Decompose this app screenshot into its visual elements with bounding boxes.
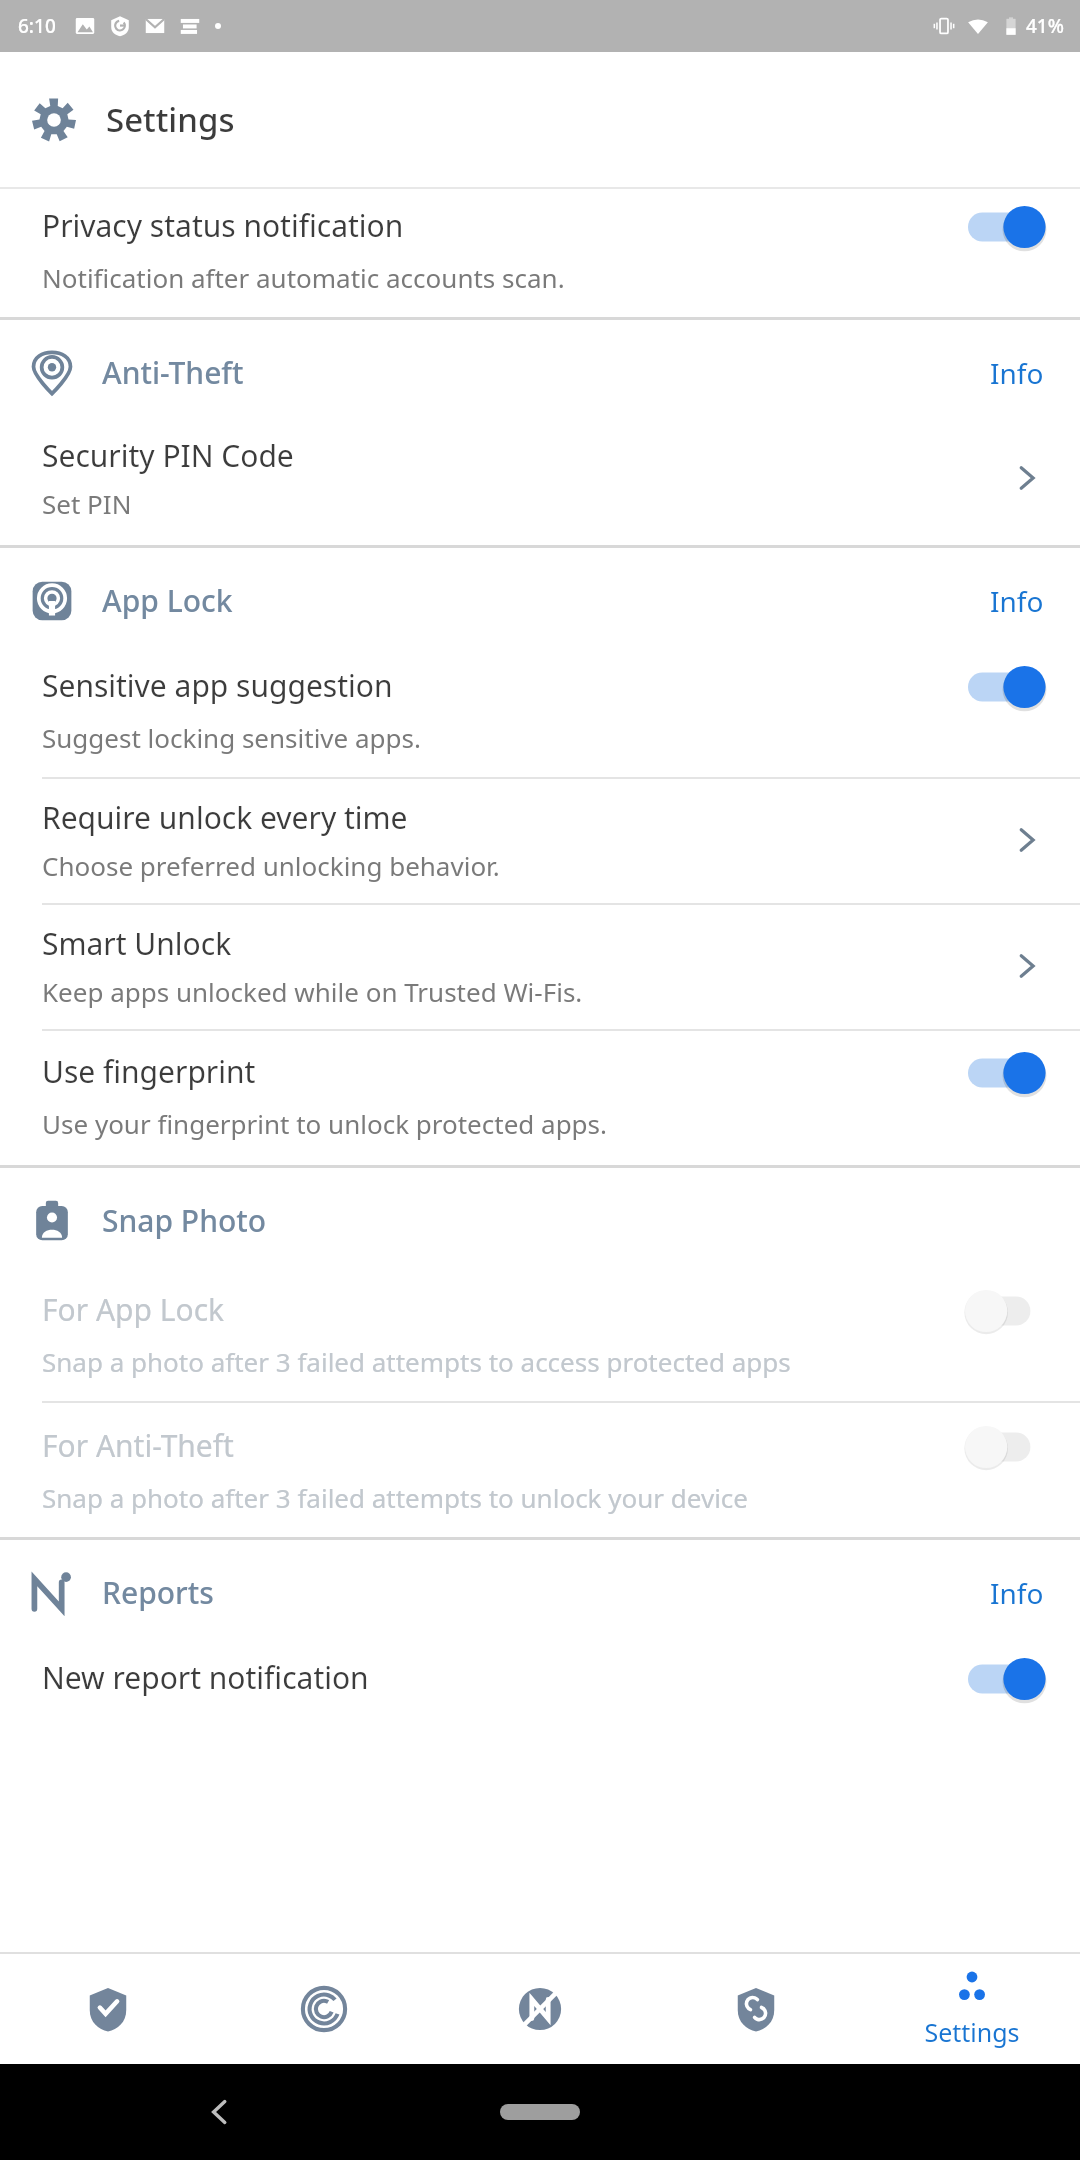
- button[interactable]: Antivirus: [216, 1954, 432, 2064]
- button[interactable]: Privacy status notification: [0, 189, 1080, 317]
- button[interactable]: New report notification: [0, 1645, 1080, 1723]
- staticText: Info: [990, 354, 1044, 392]
- button[interactable]: Sensitive app suggestion: [0, 653, 1080, 777]
- button[interactable]: Settings: [864, 1954, 1080, 2064]
- staticText: 41%: [1026, 13, 1064, 39]
- staticText: Suggest locking sensitive apps.: [42, 720, 421, 755]
- staticText: 6:10: [18, 13, 56, 39]
- button[interactable]: On: [968, 663, 1046, 711]
- button[interactable]: Off: [968, 1423, 1046, 1471]
- staticText: Set PIN: [42, 486, 132, 521]
- button[interactable]: Security: [0, 1954, 216, 2064]
- button[interactable]: Anti-Theft: [0, 320, 1080, 425]
- staticText: Snap a photo after 3 failed attempts to …: [42, 1344, 791, 1379]
- button[interactable]: Home: [500, 2104, 580, 2120]
- staticText: New report notification: [42, 1657, 369, 1698]
- button[interactable]: For App Lock: [0, 1273, 1080, 1401]
- staticText: Anti-Theft: [102, 352, 244, 393]
- button[interactable]: Info: [982, 572, 1052, 630]
- button[interactable]: Off: [968, 1287, 1046, 1335]
- button[interactable]: Link Scanner: [648, 1954, 864, 2064]
- button[interactable]: Info: [982, 344, 1052, 402]
- button[interactable]: Anti-Phishing: [432, 1954, 648, 2064]
- button[interactable]: On: [968, 1049, 1046, 1097]
- staticText: Snap a photo after 3 failed attempts to …: [42, 1480, 749, 1515]
- staticText: Smart Unlock: [42, 923, 232, 964]
- button[interactable]: Smart Unlock: [0, 905, 1080, 1029]
- staticText: Require unlock every time: [42, 797, 408, 838]
- button[interactable]: Require unlock every time: [0, 779, 1080, 903]
- button[interactable]: App Lock: [0, 548, 1080, 653]
- staticText: App Lock: [102, 580, 233, 621]
- staticText: For Anti-Theft: [42, 1425, 234, 1466]
- button[interactable]: Reports: [0, 1540, 1080, 1645]
- button[interactable]: On: [968, 203, 1046, 251]
- staticText: Info: [990, 1574, 1044, 1612]
- staticText: Keep apps unlocked while on Trusted Wi-F…: [42, 974, 583, 1009]
- button[interactable]: Security PIN Code: [0, 425, 1080, 545]
- staticText: Use your fingerprint to unlock protected…: [42, 1106, 608, 1141]
- button[interactable]: Snap Photo: [0, 1168, 1080, 1273]
- button[interactable]: Back: [200, 2092, 240, 2132]
- button[interactable]: Info: [982, 1564, 1052, 1622]
- staticText: Reports: [102, 1572, 214, 1613]
- staticText: Sensitive app suggestion: [42, 665, 393, 706]
- staticText: Settings: [924, 2015, 1020, 2049]
- staticText: Notification after automatic accounts sc…: [42, 260, 565, 295]
- staticText: Choose preferred unlocking behavior.: [42, 848, 500, 883]
- staticText: Security PIN Code: [42, 435, 294, 476]
- staticText: Privacy status notification: [42, 205, 404, 246]
- staticText: Snap Photo: [102, 1200, 267, 1241]
- button[interactable]: Use fingerprint: [0, 1031, 1080, 1165]
- staticText: Use fingerprint: [42, 1051, 256, 1092]
- button[interactable]: For Anti-Theft: [0, 1403, 1080, 1537]
- staticText: Settings: [106, 97, 235, 142]
- staticText: Info: [990, 582, 1044, 620]
- staticText: For App Lock: [42, 1289, 225, 1330]
- button[interactable]: On: [968, 1655, 1046, 1703]
